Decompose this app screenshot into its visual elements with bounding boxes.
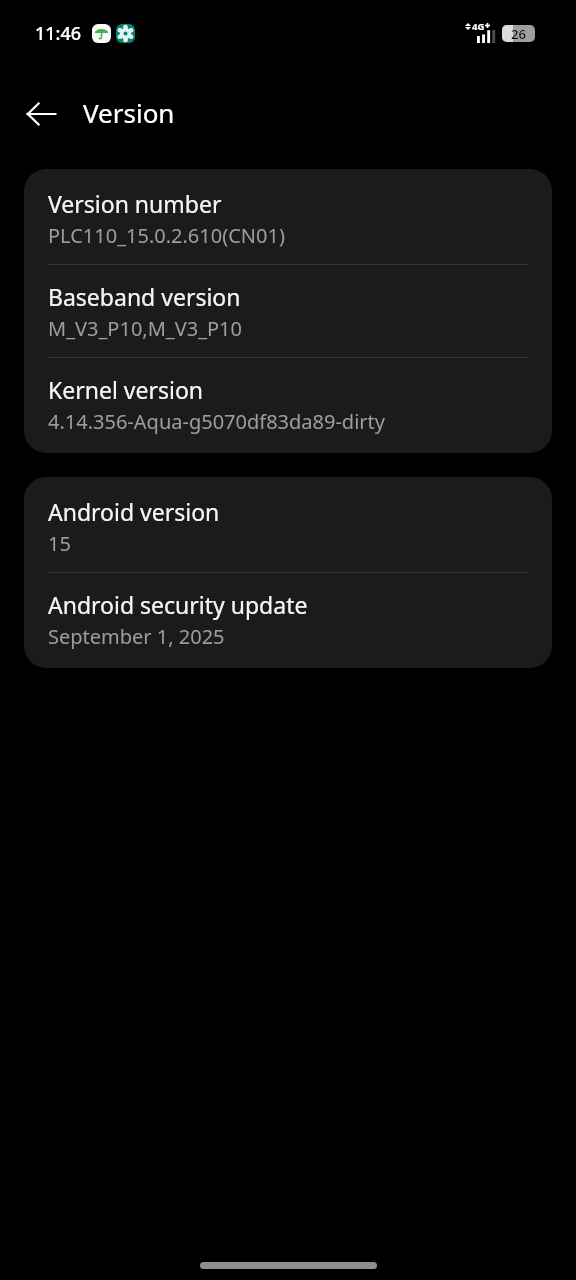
staticText: 15 <box>48 531 71 556</box>
staticText: Version number <box>48 191 222 219</box>
button[interactable]: Version number <box>24 172 552 265</box>
staticText: Android security update <box>48 592 308 620</box>
staticText: 4.14.356-Aqua-g5070df83da89-dirty <box>48 409 385 434</box>
button[interactable]: Back <box>17 90 65 138</box>
staticText: Version <box>83 95 175 130</box>
button[interactable]: Baseband version <box>24 265 552 358</box>
staticText: Kernel version <box>48 377 204 405</box>
staticText: Baseband version <box>48 284 241 312</box>
staticText: Android version <box>48 499 220 527</box>
staticText: 26 <box>511 25 526 42</box>
button[interactable]: Android version <box>24 480 552 573</box>
staticText: 11:46 <box>35 21 82 46</box>
staticText: September 1, 2025 <box>48 624 225 649</box>
button[interactable]: Kernel version <box>24 358 552 450</box>
staticText: 4G <box>472 20 485 33</box>
button[interactable]: Android security update <box>24 573 552 665</box>
staticText: M_V3_P10,M_V3_P10 <box>48 316 242 341</box>
staticText: PLC110_15.0.2.610(CN01) <box>48 223 285 248</box>
